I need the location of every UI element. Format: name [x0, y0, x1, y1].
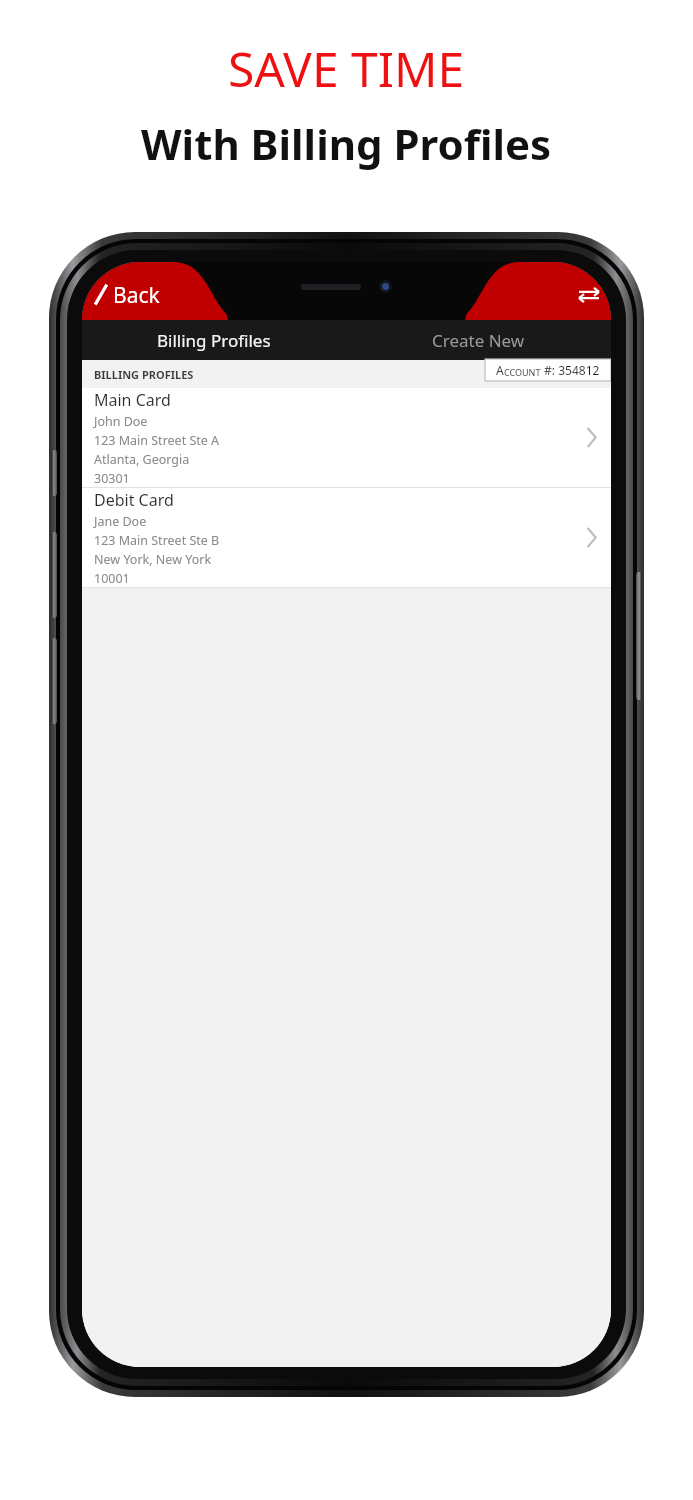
- staticText: With Billing Profiles: [141, 115, 552, 172]
- staticText: Atlanta, Georgia: [94, 451, 190, 468]
- button[interactable]: Transfer: [567, 273, 611, 317]
- button[interactable]: Create New: [346, 320, 611, 360]
- staticText: Debit Card: [94, 489, 174, 511]
- staticText: BILLING PROFILES: [94, 367, 194, 382]
- staticText: Main Card: [94, 389, 171, 411]
- staticText: Jane Doe: [94, 513, 147, 530]
- button[interactable]: Main Card: [82, 388, 611, 487]
- button[interactable]: Billing Profiles: [82, 320, 346, 360]
- staticText: 123 Main Street Ste A: [94, 432, 220, 449]
- staticText: Back: [113, 281, 160, 310]
- staticText: 123 Main Street Ste B: [94, 532, 220, 549]
- staticText: Create New: [432, 329, 525, 352]
- staticText: 10001: [94, 570, 130, 587]
- staticText: New York, New York: [94, 551, 212, 568]
- staticText: A: [496, 362, 504, 378]
- staticText: CCOUNT: [504, 366, 541, 378]
- button[interactable]: A: [485, 359, 611, 381]
- button[interactable]: Debit Card: [82, 488, 611, 587]
- button[interactable]: Back: [82, 274, 172, 316]
- staticText: #: 354812: [541, 362, 600, 378]
- staticText: John Doe: [94, 413, 148, 430]
- staticText: Billing Profiles: [157, 329, 271, 352]
- staticText: 30301: [94, 470, 130, 487]
- staticText: SAVE TIME: [228, 36, 465, 101]
